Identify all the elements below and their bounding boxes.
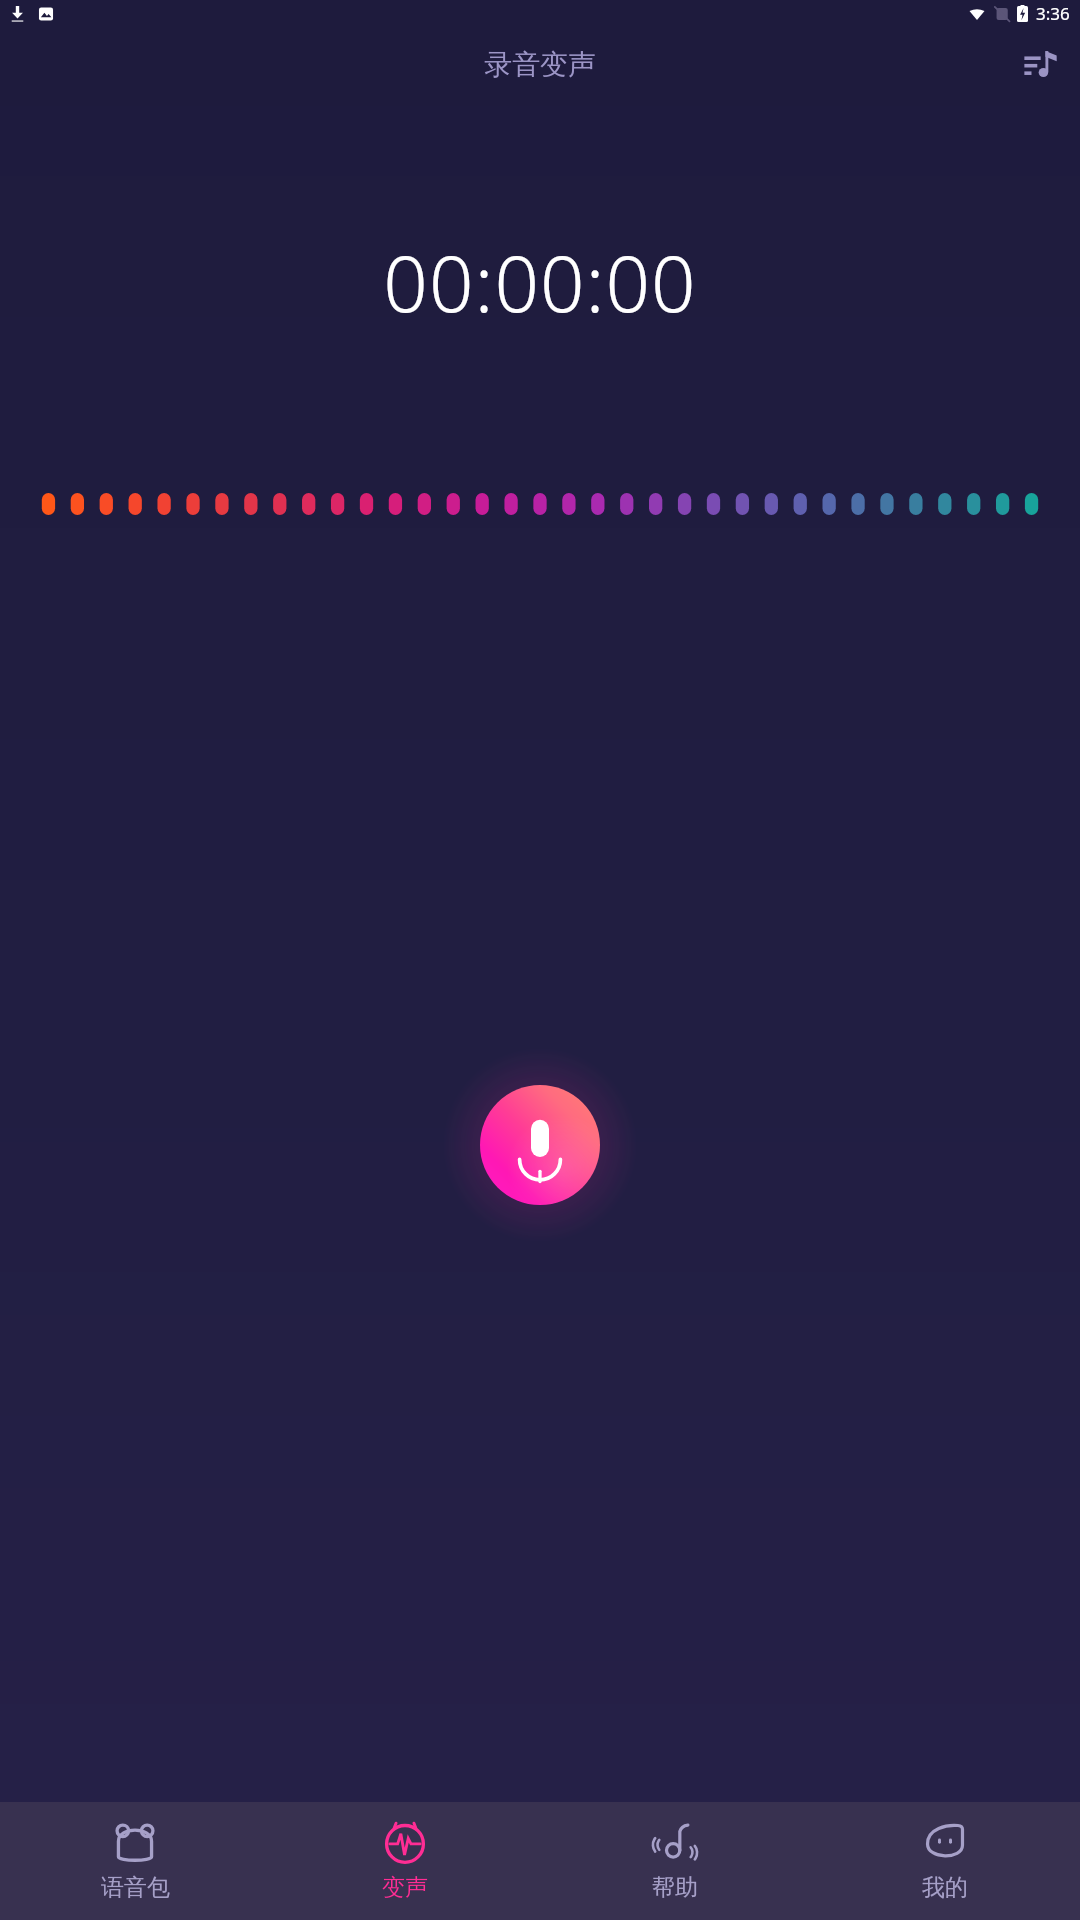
staticText: 我的: [922, 1873, 968, 1902]
staticText: 3:36: [1036, 2, 1070, 25]
staticText: 帮助: [652, 1873, 698, 1902]
staticText: 变声: [382, 1873, 428, 1902]
button[interactable]: 语音包: [0, 1812, 270, 1910]
button[interactable]: Start recording: [440, 1045, 640, 1245]
button[interactable]: 我的: [810, 1812, 1080, 1910]
button[interactable]: Recordings list: [1014, 38, 1066, 90]
button[interactable]: 变声: [270, 1812, 540, 1910]
button[interactable]: 帮助: [540, 1812, 810, 1910]
staticText: 录音变声: [484, 47, 596, 82]
staticText: 语音包: [101, 1873, 170, 1902]
staticText: 00:00:00: [383, 229, 697, 335]
